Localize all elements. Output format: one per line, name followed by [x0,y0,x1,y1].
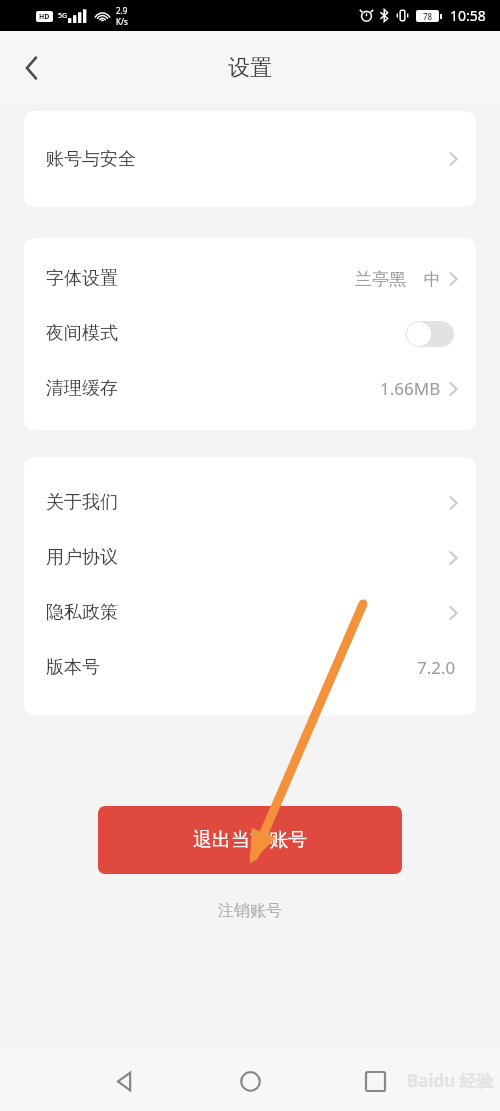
button[interactable]: 用户协议 [24,530,476,585]
button[interactable]: Recents [349,1055,401,1107]
button[interactable]: Back [10,46,54,90]
button[interactable]: Home [224,1055,276,1107]
staticText: 注销账号 [218,901,282,921]
button[interactable]: 字体设置 [24,251,476,306]
staticText: 夜间模式 [46,322,118,345]
button[interactable]: 注销账号 [198,896,302,926]
staticText: 版本号 [46,656,100,679]
button[interactable]: 清理缓存 [24,361,476,416]
staticText: 1.66MB [380,377,441,400]
staticText: 兰亭黑 中 [355,267,441,290]
staticText: 5G [58,11,68,21]
button[interactable]: 退出当前账号 [98,806,402,874]
staticText: 隐私政策 [46,601,118,624]
staticText: 退出当前账号 [193,828,307,852]
button[interactable]: 版本号 [24,640,476,695]
staticText: 设置 [228,54,272,82]
button[interactable]: 夜间模式 [24,306,476,361]
button[interactable]: Night mode toggle [406,321,454,347]
staticText: 清理缓存 [46,377,118,400]
button[interactable]: 隐私政策 [24,585,476,640]
staticText: K/s [116,16,128,27]
staticText: 关于我们 [46,491,118,514]
staticText: 78 [423,11,433,22]
staticText: 2.9 [116,5,128,16]
staticText: HD [39,12,50,22]
button[interactable]: Back [99,1055,151,1107]
button[interactable]: 账号与安全 [24,111,476,207]
staticText: 10:58 [450,6,486,25]
staticText: 字体设置 [46,267,118,290]
staticText: 7.2.0 [417,656,456,679]
button[interactable]: 关于我们 [24,475,476,530]
staticText: Baidu 经验 [407,1069,494,1092]
staticText: 账号与安全 [46,148,136,171]
staticText: 用户协议 [46,546,118,569]
